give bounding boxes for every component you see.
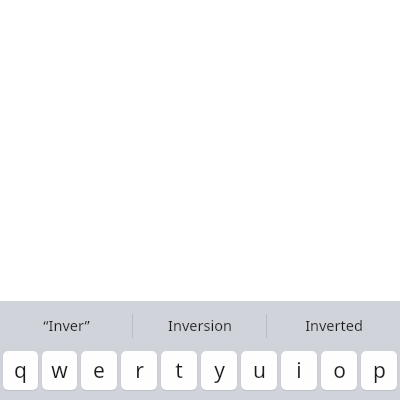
staticText: q <box>14 356 27 385</box>
button[interactable]: i <box>281 351 317 390</box>
button[interactable]: t <box>161 351 197 390</box>
staticText: e <box>93 356 105 385</box>
button[interactable]: e <box>81 351 117 390</box>
button[interactable]: w <box>42 351 77 390</box>
button[interactable]: “Inver” <box>0 301 132 351</box>
staticText: o <box>333 356 346 385</box>
staticText: t <box>175 356 183 385</box>
button[interactable]: Inverted <box>267 301 400 351</box>
button[interactable]: y <box>201 351 237 390</box>
button[interactable]: u <box>241 351 277 390</box>
button[interactable]: p <box>361 351 397 390</box>
staticText: r <box>135 356 144 385</box>
staticText: i <box>296 356 302 385</box>
staticText: y <box>214 356 225 385</box>
button[interactable]: Inversion <box>133 301 266 351</box>
staticText: u <box>253 356 266 385</box>
button[interactable]: q <box>3 351 38 390</box>
staticText: p <box>373 356 386 385</box>
button[interactable]: o <box>321 351 357 390</box>
staticText: Inversion <box>168 315 232 335</box>
button[interactable]: r <box>121 351 157 390</box>
staticText: “Inver” <box>43 315 90 335</box>
staticText: w <box>51 356 68 385</box>
staticText: Inverted <box>305 315 363 335</box>
